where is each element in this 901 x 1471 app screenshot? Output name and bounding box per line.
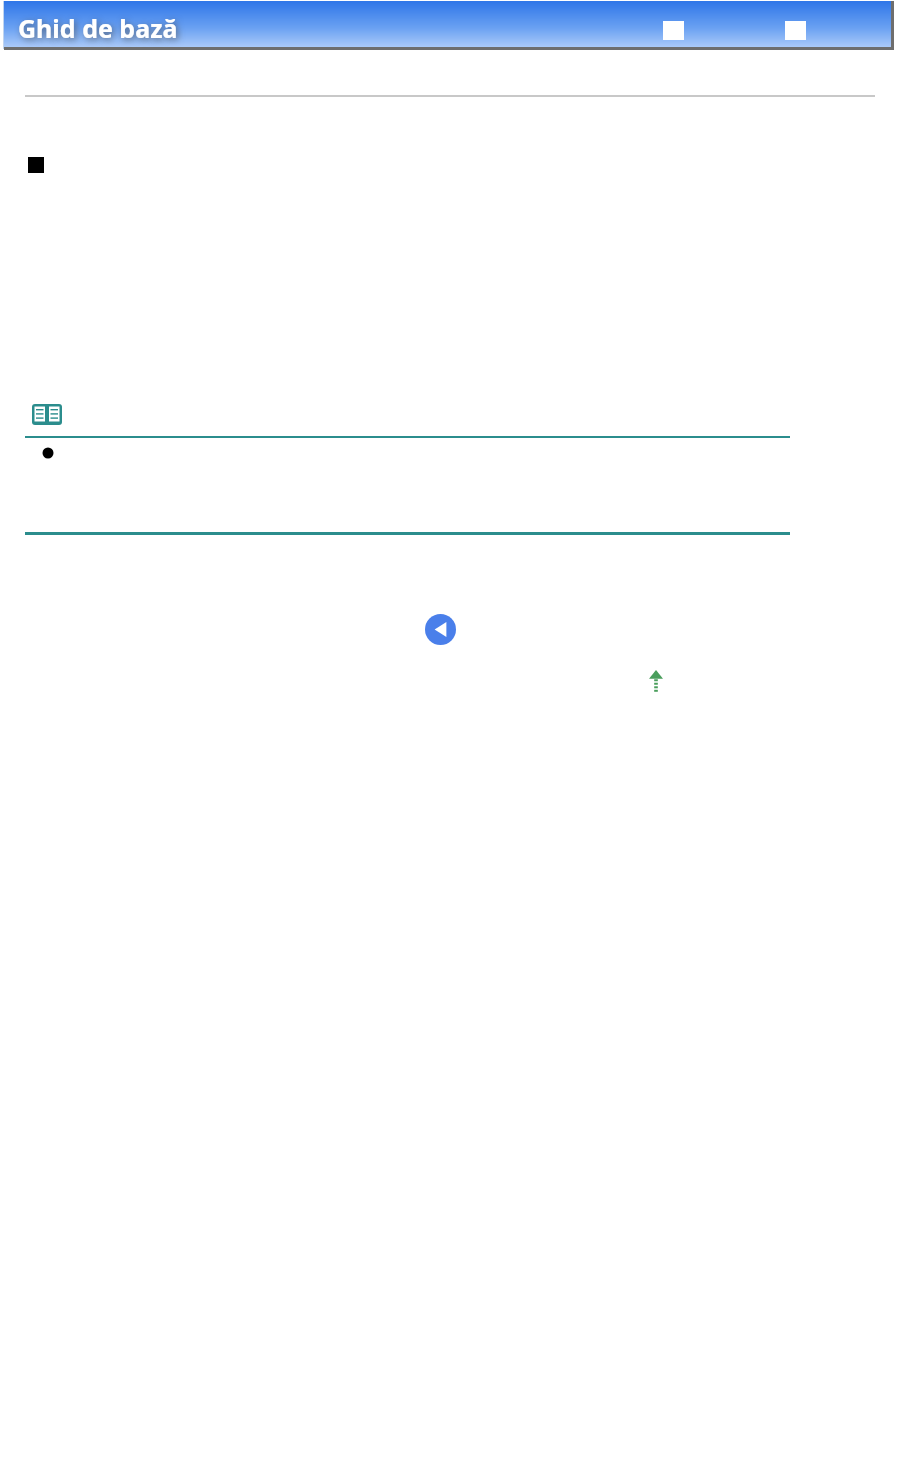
button[interactable] bbox=[4, 1, 894, 50]
button[interactable]: Back bbox=[425, 614, 456, 645]
other: Note bbox=[32, 403, 62, 425]
staticText: Ghid de bază bbox=[18, 11, 178, 45]
button[interactable]: Page top bbox=[649, 670, 663, 692]
